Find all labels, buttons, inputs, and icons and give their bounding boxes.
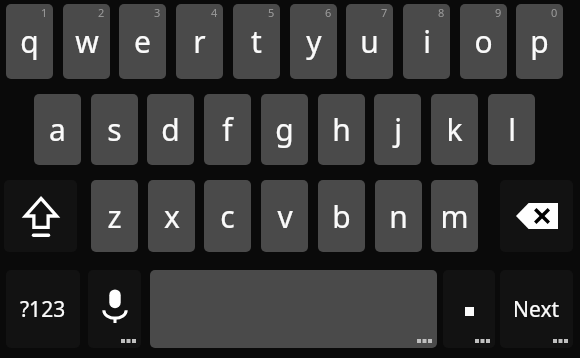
- staticText: 5: [268, 5, 275, 20]
- button[interactable]: h: [318, 94, 365, 165]
- staticText: b: [332, 196, 351, 237]
- staticText: h: [332, 109, 351, 150]
- button[interactable]: e: [119, 4, 166, 79]
- staticText: a: [49, 109, 66, 150]
- staticText: Next: [513, 295, 560, 324]
- staticText: p: [530, 21, 549, 62]
- button[interactable]: t: [233, 4, 280, 79]
- button[interactable]: q: [6, 4, 53, 79]
- button[interactable]: u: [346, 4, 393, 79]
- staticText: 3: [154, 5, 161, 20]
- staticText: 8: [438, 5, 445, 20]
- staticText: j: [394, 109, 402, 150]
- staticText: x: [164, 196, 180, 237]
- button[interactable]: o: [460, 4, 507, 79]
- button[interactable]: r: [176, 4, 223, 79]
- button[interactable]: n: [375, 180, 422, 252]
- button[interactable]: b: [318, 180, 365, 252]
- staticText: 0: [551, 5, 558, 20]
- staticText: s: [107, 109, 122, 150]
- staticText: o: [474, 21, 493, 62]
- button[interactable]: Next: [500, 270, 573, 348]
- staticText: 6: [325, 5, 332, 20]
- button[interactable]: ?123: [6, 270, 80, 348]
- button[interactable]: l: [488, 94, 535, 165]
- button[interactable]: d: [147, 94, 194, 165]
- button[interactable]: z: [91, 180, 138, 252]
- staticText: 7: [381, 5, 388, 20]
- staticText: q: [20, 21, 39, 62]
- staticText: n: [389, 196, 408, 237]
- staticText: f: [222, 109, 233, 150]
- button[interactable]: [443, 270, 495, 348]
- staticText: w: [75, 21, 99, 62]
- button[interactable]: g: [261, 94, 308, 165]
- staticText: 2: [98, 5, 105, 20]
- button[interactable]: Voice input: [88, 270, 141, 348]
- button[interactable]: p: [516, 4, 563, 79]
- staticText: 4: [211, 5, 218, 20]
- staticText: l: [508, 109, 516, 150]
- staticText: t: [251, 21, 262, 62]
- staticText: c: [220, 196, 235, 237]
- button[interactable]: x: [148, 180, 195, 252]
- staticText: i: [423, 21, 431, 62]
- staticText: d: [161, 109, 180, 150]
- button[interactable]: y: [290, 4, 337, 79]
- button[interactable]: Backspace: [500, 180, 573, 252]
- staticText: z: [107, 196, 122, 237]
- button[interactable]: m: [431, 180, 478, 252]
- staticText: y: [306, 21, 322, 62]
- button[interactable]: f: [204, 94, 251, 165]
- button[interactable]: c: [204, 180, 251, 252]
- staticText: 1: [41, 5, 48, 20]
- staticText: u: [360, 21, 379, 62]
- staticText: v: [277, 196, 293, 237]
- button[interactable]: w: [63, 4, 110, 79]
- button[interactable]: s: [91, 94, 138, 165]
- staticText: g: [275, 109, 294, 150]
- staticText: 9: [495, 5, 502, 20]
- staticText: e: [134, 21, 151, 62]
- staticText: r: [193, 21, 206, 62]
- staticText: k: [446, 109, 463, 150]
- button[interactable]: i: [403, 4, 450, 79]
- button[interactable]: j: [374, 94, 421, 165]
- button[interactable]: a: [34, 94, 81, 165]
- staticText: ?123: [20, 295, 66, 324]
- button[interactable]: k: [431, 94, 478, 165]
- button[interactable]: Space: [150, 270, 437, 348]
- button[interactable]: v: [261, 180, 308, 252]
- staticText: m: [440, 196, 469, 237]
- button[interactable]: Shift: [4, 180, 77, 252]
